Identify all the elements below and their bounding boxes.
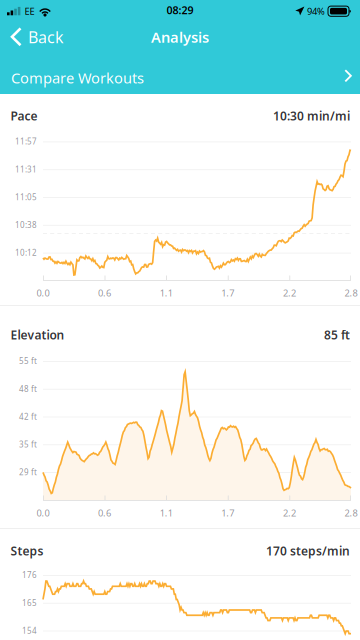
staticText: 2.8 [344, 507, 357, 519]
staticText: Compare Workouts [11, 68, 144, 87]
staticText: 165 [22, 597, 37, 608]
staticText: 08:29 [166, 3, 193, 17]
staticText: 94% [307, 5, 325, 17]
staticText: 10:12 [15, 247, 37, 258]
staticText: 0.0 [36, 287, 49, 299]
staticText: 42 ft [19, 411, 37, 422]
staticText: Analysis [151, 27, 209, 47]
staticText: 10:30 min/mi [273, 108, 350, 124]
staticText: 0.6 [98, 287, 111, 299]
staticText: 0.0 [36, 507, 49, 519]
button[interactable]: Compare Workouts [0, 56, 360, 94]
staticText: 0.6 [98, 507, 111, 519]
staticText: Back [28, 26, 64, 48]
staticText: 35 ft [19, 439, 37, 450]
staticText: 11:57 [15, 136, 37, 147]
staticText: EE [24, 5, 34, 17]
button[interactable]: Back [0, 22, 96, 52]
staticText: 2.2 [283, 287, 296, 299]
staticText: 154 [22, 625, 37, 636]
staticText: 11:31 [15, 164, 37, 175]
staticText: 1.1 [160, 287, 173, 299]
staticText: 170 steps/min [266, 543, 350, 559]
staticText: 48 ft [19, 383, 37, 394]
staticText: 10:38 [15, 220, 37, 230]
staticText: 2.8 [344, 287, 357, 299]
staticText: Elevation [10, 327, 64, 343]
staticText: 176 [22, 570, 37, 580]
staticText: 11:05 [15, 192, 37, 202]
staticText: 29 ft [19, 467, 37, 477]
staticText: Pace [10, 108, 37, 124]
staticText: 1.7 [221, 287, 234, 299]
staticText: 85 ft [324, 327, 350, 343]
staticText: Steps [10, 543, 43, 559]
staticText: 1.7 [221, 507, 234, 519]
staticText: 2.2 [283, 507, 296, 519]
staticText: 55 ft [19, 356, 37, 366]
staticText: 1.1 [160, 507, 173, 519]
